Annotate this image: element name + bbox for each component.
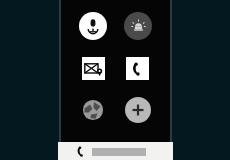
button[interactable]: Flashlight <box>124 12 152 40</box>
other: Call <box>76 146 87 157</box>
button[interactable]: Mail location <box>82 57 105 80</box>
button[interactable]: Phone <box>126 57 149 80</box>
button[interactable]: Voice search <box>79 12 107 40</box>
button[interactable]: Add <box>125 97 151 123</box>
button[interactable]: Browser <box>80 97 106 123</box>
button[interactable]: Call <box>58 142 173 160</box>
